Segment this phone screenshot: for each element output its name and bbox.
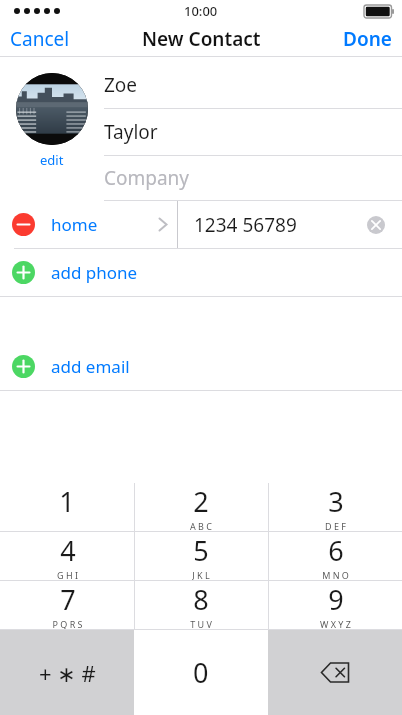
- button[interactable]: add phone: [0, 249, 402, 296]
- staticText: add email: [51, 355, 130, 378]
- staticText: Company: [104, 165, 190, 191]
- button[interactable]: 8: [134, 581, 268, 629]
- staticText: 7: [60, 581, 76, 618]
- button[interactable]: Company: [104, 156, 402, 200]
- button[interactable]: Zoe: [104, 62, 402, 108]
- staticText: Zoe: [104, 72, 138, 98]
- staticText: 4: [60, 532, 76, 569]
- button[interactable]: 9: [268, 581, 402, 629]
- staticText: G H I: [57, 569, 78, 580]
- button[interactable]: Contact photo: [16, 73, 88, 145]
- staticText: add phone: [51, 261, 138, 284]
- button[interactable]: Clear phone number: [358, 207, 394, 243]
- staticText: 8: [193, 581, 209, 618]
- staticText: 10:00: [184, 2, 218, 20]
- staticText: home: [51, 213, 98, 236]
- button[interactable]: 1: [0, 483, 134, 531]
- staticText: 1234 56789: [194, 212, 297, 238]
- button[interactable]: Backspace: [268, 630, 402, 715]
- button[interactable]: 0: [134, 630, 268, 715]
- staticText: P Q R S: [52, 618, 83, 629]
- staticText: + ∗ #: [39, 658, 96, 688]
- button[interactable]: Taylor: [104, 109, 402, 155]
- staticText: 2: [193, 483, 209, 520]
- staticText: Cancel: [10, 26, 70, 52]
- staticText: W X Y Z: [320, 618, 351, 629]
- staticText: J K L: [192, 569, 210, 580]
- staticText: 6: [328, 532, 344, 569]
- staticText: 5: [193, 532, 209, 569]
- staticText: edit: [40, 151, 64, 169]
- staticText: 3: [328, 483, 344, 520]
- button[interactable]: 7: [0, 581, 134, 629]
- staticText: M N O: [322, 569, 349, 580]
- staticText: D E F: [325, 520, 346, 531]
- staticText: 1: [59, 483, 75, 520]
- button[interactable]: Done: [333, 22, 402, 56]
- button[interactable]: 5: [134, 532, 268, 580]
- staticText: 0: [193, 654, 209, 691]
- staticText: A B C: [190, 520, 212, 531]
- staticText: 9: [328, 581, 344, 618]
- staticText: New Contact: [142, 26, 261, 52]
- button[interactable]: Symbols: [0, 630, 134, 715]
- button[interactable]: 2: [134, 483, 268, 531]
- staticText: Taylor: [104, 119, 158, 145]
- button[interactable]: edit: [32, 149, 72, 171]
- button[interactable]: 6: [268, 532, 402, 580]
- staticText: T U V: [190, 618, 212, 629]
- button[interactable]: home: [0, 201, 402, 248]
- button[interactable]: Cancel: [0, 22, 80, 56]
- button[interactable]: 4: [0, 532, 134, 580]
- staticText: Done: [343, 26, 392, 52]
- button[interactable]: 3: [268, 483, 402, 531]
- button[interactable]: add email: [0, 343, 402, 390]
